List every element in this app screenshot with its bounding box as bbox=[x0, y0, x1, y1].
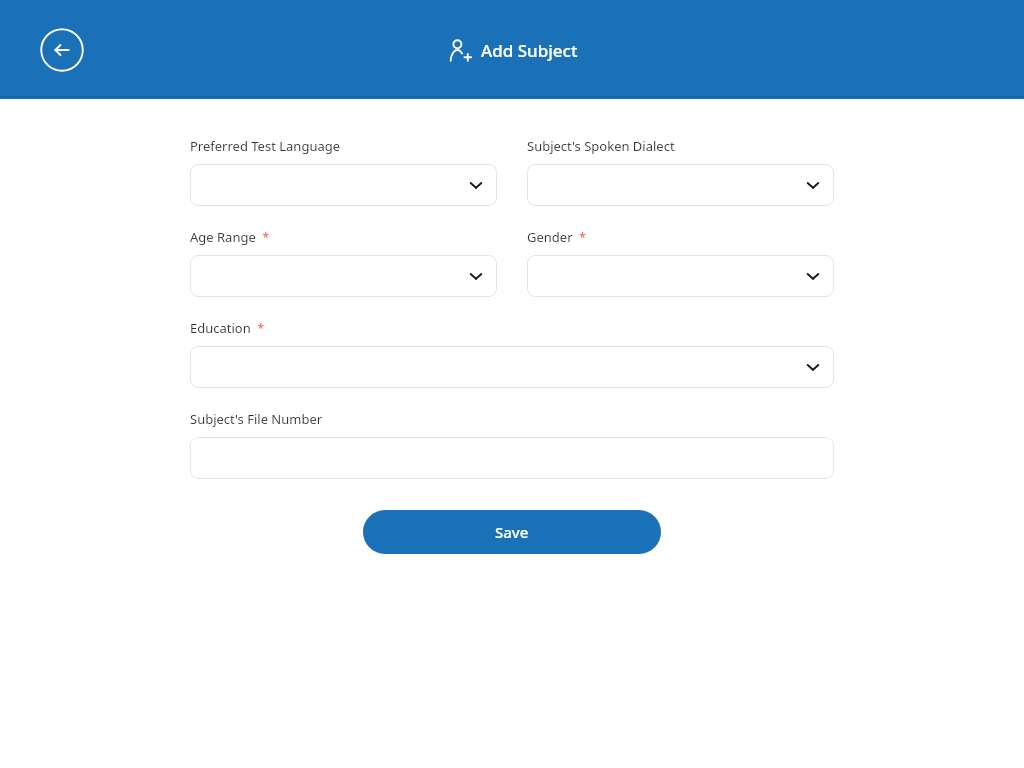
staticText: Add Subject bbox=[481, 39, 578, 62]
button[interactable]: Gender bbox=[527, 255, 834, 297]
staticText: Save bbox=[495, 522, 529, 542]
staticText: Preferred Test Language bbox=[190, 137, 341, 155]
staticText: Age Range * bbox=[190, 228, 270, 246]
staticText: Education * bbox=[190, 319, 265, 337]
staticText: Gender * bbox=[527, 228, 586, 246]
button[interactable]: Preferred Test Language bbox=[190, 164, 497, 206]
staticText: Subject's Spoken Dialect bbox=[527, 137, 675, 155]
button[interactable]: Back bbox=[40, 28, 84, 72]
button[interactable]: Subject's File Number bbox=[190, 437, 834, 479]
button[interactable]: Education bbox=[190, 346, 834, 388]
staticText: Subject's File Number bbox=[190, 410, 323, 428]
button[interactable]: Subject's Spoken Dialect bbox=[527, 164, 834, 206]
button[interactable]: Age Range bbox=[190, 255, 497, 297]
button[interactable]: Save bbox=[363, 510, 661, 554]
